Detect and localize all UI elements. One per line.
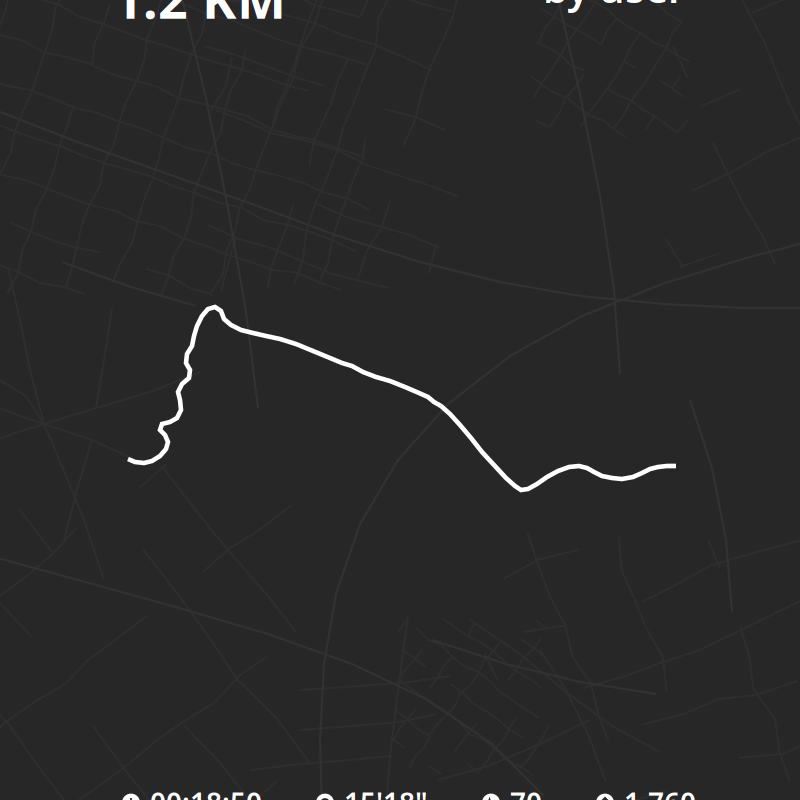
staticText: 00:18:50	[150, 784, 262, 800]
button[interactable]: 70	[482, 784, 542, 800]
staticText: 1.760	[624, 784, 696, 800]
staticText: by user	[543, 0, 685, 14]
staticText: 1.2 KM	[113, 0, 286, 33]
button[interactable]: 15'18"	[316, 784, 428, 800]
button[interactable]: 00:18:50	[122, 784, 262, 800]
staticText: 15'18"	[344, 784, 428, 800]
staticText: 70	[510, 784, 542, 800]
button[interactable]: 1.760	[596, 784, 696, 800]
